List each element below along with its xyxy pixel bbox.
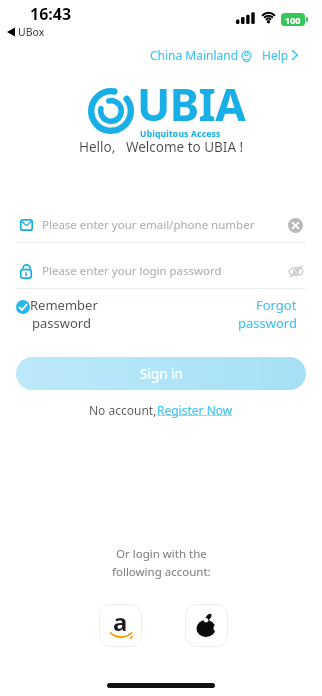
staticText: following account:: [112, 564, 211, 580]
button[interactable]: China Mainland: [150, 47, 298, 63]
staticText: Forgot: [256, 296, 297, 314]
staticText: Help: [262, 47, 289, 63]
staticText: Ubiquitous Access: [140, 128, 221, 140]
button[interactable]: Forgot: [238, 296, 297, 332]
staticText: Register Now: [157, 402, 233, 418]
staticText: China Mainland: [150, 47, 239, 63]
staticText: password: [238, 314, 297, 332]
staticText: UBIA: [137, 74, 246, 134]
button[interactable]: Please enter your email/phone number: [16, 210, 306, 240]
staticText: No account,: [89, 402, 157, 418]
staticText: a: [113, 605, 128, 638]
staticText: UBox: [18, 25, 45, 39]
staticText: Please enter your email/phone number: [42, 217, 255, 233]
staticText: 16:43: [30, 3, 72, 25]
button[interactable]: UBox: [7, 25, 45, 39]
staticText: password: [32, 314, 91, 332]
staticText: Please enter your login password: [42, 263, 222, 279]
staticText: Hello, Welcome to UBIA !: [79, 138, 244, 156]
staticText: Sign in: [140, 365, 183, 383]
staticText: Remember: [30, 296, 98, 314]
button[interactable]: a: [99, 604, 142, 647]
staticText: Or login with the: [116, 546, 207, 562]
button[interactable]: Remember: [16, 296, 98, 332]
button[interactable]: [185, 604, 228, 647]
button[interactable]: No account,: [89, 402, 233, 418]
button[interactable]: Please enter your login password: [16, 256, 306, 286]
button[interactable]: Sign in: [16, 357, 306, 390]
staticText: 100: [285, 14, 301, 26]
